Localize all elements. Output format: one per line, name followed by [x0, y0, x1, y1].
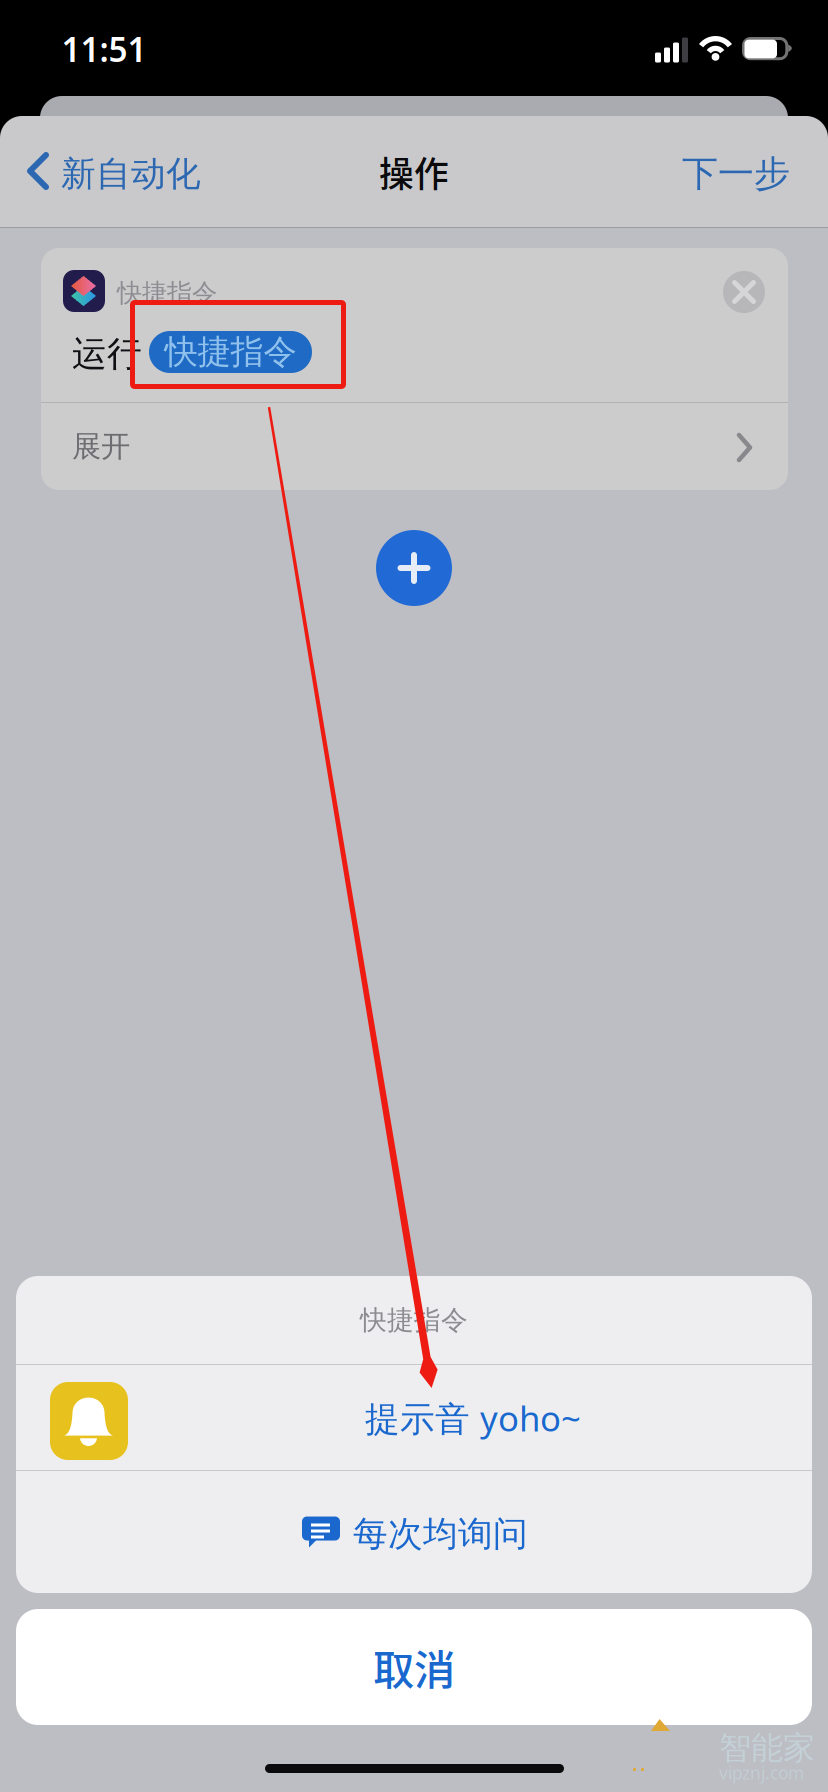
- staticText: 每次均询问: [353, 1512, 528, 1556]
- staticText: 取消: [373, 1637, 455, 1697]
- staticText: 11:51: [61, 26, 146, 72]
- staticText: 快捷指令: [360, 1303, 468, 1337]
- staticText: 新自动化: [61, 152, 201, 196]
- staticText: vipznj.com: [719, 1761, 804, 1785]
- button[interactable]: 每次均询问: [16, 1470, 812, 1593]
- button[interactable]: Add action: [376, 530, 452, 606]
- staticText: 快捷指令: [117, 277, 217, 309]
- button[interactable]: 新自动化: [0, 116, 200, 228]
- staticText: 下一步: [682, 151, 790, 196]
- staticText: 提示音 yoho~: [365, 1394, 581, 1442]
- button[interactable]: 下一步: [658, 116, 828, 228]
- staticText: 展开: [72, 428, 130, 465]
- staticText: 快捷指令: [164, 331, 296, 373]
- staticText: 操作: [379, 147, 449, 197]
- button[interactable]: 提示音 yoho~: [16, 1364, 812, 1470]
- button[interactable]: 取消: [16, 1609, 812, 1725]
- button[interactable]: 展开: [41, 403, 788, 490]
- staticText: 智能家: [719, 1728, 815, 1768]
- staticText: 运行: [72, 332, 142, 376]
- button[interactable]: Remove action: [723, 271, 765, 313]
